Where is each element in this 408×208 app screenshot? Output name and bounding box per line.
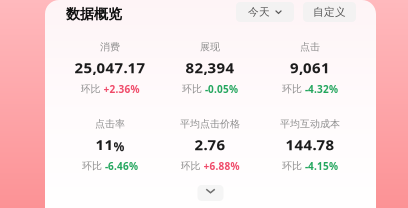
staticText: 今天 — [248, 5, 270, 19]
staticText: -6.46% — [105, 159, 138, 173]
staticText: +6.88% — [203, 159, 239, 173]
staticText: 环比 — [182, 83, 202, 95]
staticText: +2.36% — [103, 82, 139, 96]
staticText: 环比 — [80, 83, 100, 95]
staticText: 环比 — [282, 160, 302, 172]
button[interactable]: 今天 — [236, 2, 294, 22]
staticText: 环比 — [282, 83, 302, 95]
staticText: 自定义 — [313, 5, 346, 19]
staticText: -4.32% — [305, 82, 338, 96]
staticText: % — [113, 138, 124, 155]
staticText: -4.15% — [305, 159, 338, 173]
button[interactable]: 自定义 — [303, 2, 356, 22]
staticText: -0.05% — [205, 82, 238, 96]
staticText: 25,047.17 — [74, 57, 145, 78]
staticText: 11 — [95, 134, 113, 155]
staticText: 平均点击价格 — [180, 118, 240, 130]
staticText: 82,394 — [185, 57, 234, 78]
staticText: 点击率 — [95, 118, 125, 130]
button[interactable]: 展开 — [197, 185, 223, 201]
staticText: 环比 — [82, 160, 102, 172]
staticText: 9,061 — [290, 57, 330, 78]
staticText: 144.78 — [285, 134, 334, 155]
staticText: 展现 — [200, 41, 220, 53]
staticText: 点击 — [300, 41, 320, 53]
staticText: 平均互动成本 — [280, 118, 340, 130]
staticText: 2.76 — [194, 134, 225, 155]
staticText: 数据概览 — [66, 5, 122, 23]
staticText: 环比 — [180, 160, 200, 172]
staticText: 消费 — [100, 41, 120, 53]
